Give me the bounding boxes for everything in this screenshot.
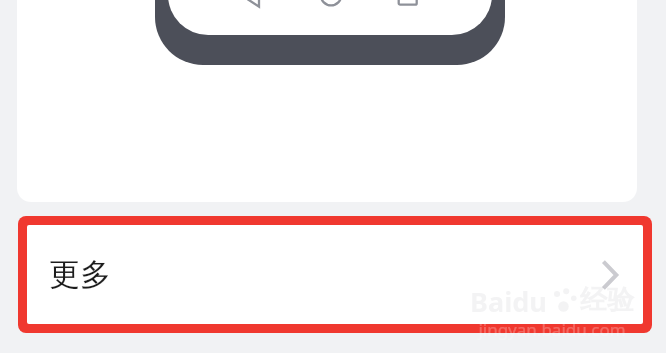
staticText: 更多 <box>49 255 111 294</box>
staticText: 经验 <box>580 283 634 317</box>
button[interactable]: 更多 <box>27 225 643 324</box>
staticText: Baidu <box>470 283 547 317</box>
button[interactable] <box>17 0 637 202</box>
other: More <box>600 259 619 291</box>
staticText: jingyan.baidu.com <box>448 318 656 341</box>
